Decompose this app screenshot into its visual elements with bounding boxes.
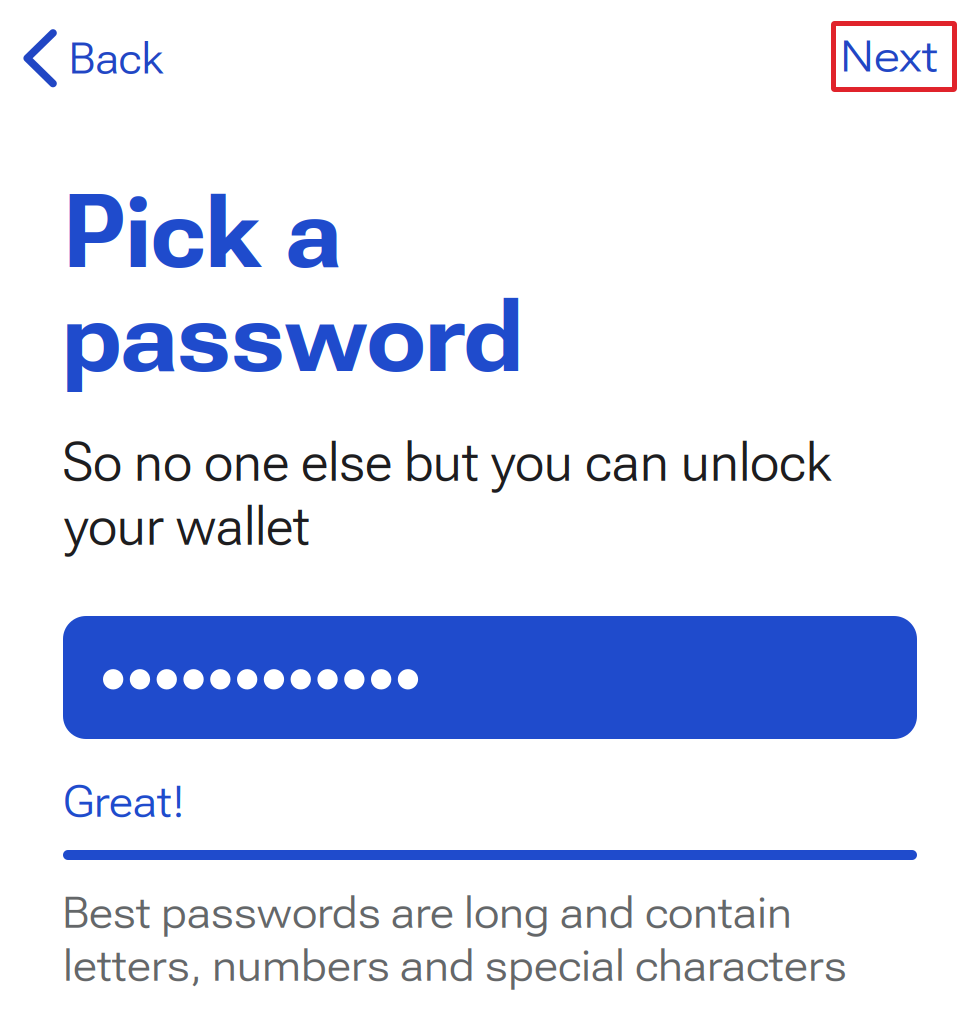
- staticText: Next: [840, 31, 938, 82]
- staticText: password: [62, 277, 523, 396]
- button[interactable]: Next: [833, 23, 954, 89]
- staticText: Great!: [63, 776, 185, 828]
- staticText: Best passwords are long and contain: [62, 887, 792, 939]
- staticText: letters, numbers and special characters: [63, 940, 847, 992]
- button[interactable]: Back: [0, 12, 210, 104]
- staticText: So no one else but you can unlock: [62, 430, 831, 494]
- staticText: Back: [68, 33, 163, 84]
- staticText: your wallet: [64, 494, 310, 558]
- staticText: Pick a: [64, 173, 341, 292]
- button[interactable]: Password: [63, 616, 917, 739]
